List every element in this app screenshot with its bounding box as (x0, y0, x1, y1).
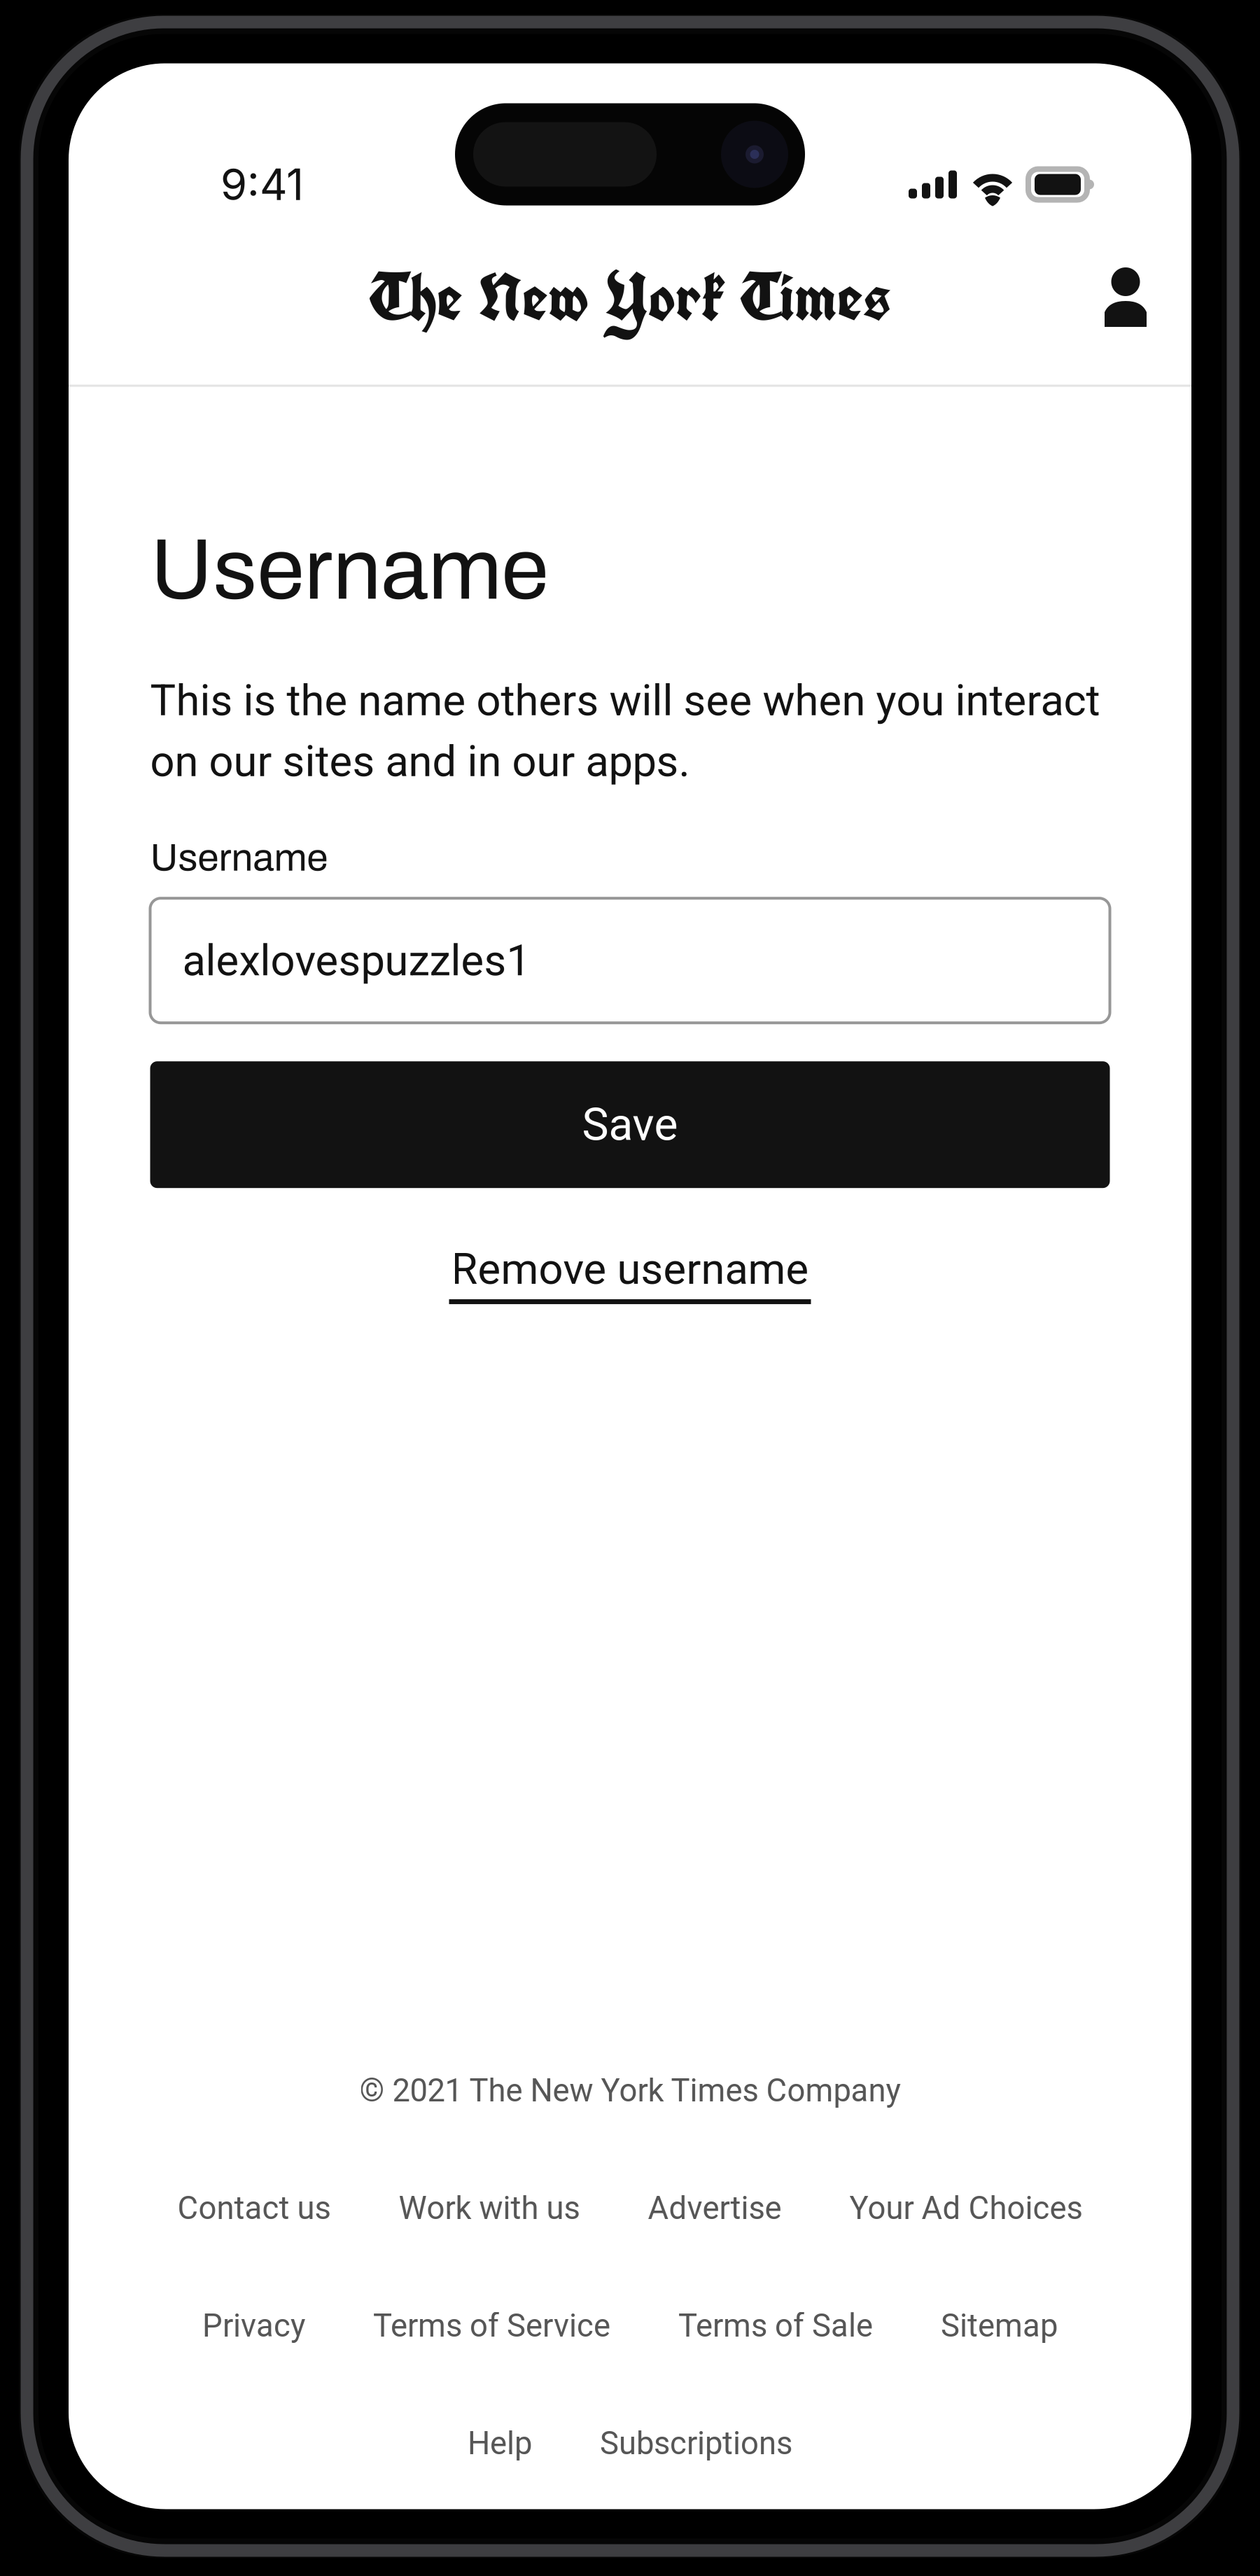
staticText: Remove username (451, 1244, 809, 1294)
button[interactable]: Sitemap (941, 2267, 1058, 2385)
staticText: The New York Times (369, 254, 891, 340)
button[interactable]: Advertise (648, 2149, 782, 2267)
button[interactable]: Privacy (202, 2267, 305, 2385)
staticText: Username (150, 523, 548, 617)
staticText: Help (468, 2425, 532, 2462)
staticText: Save (582, 1098, 678, 1151)
staticText: Contact us (177, 2190, 331, 2227)
button[interactable]: Your Ad Choices (849, 2149, 1083, 2267)
button[interactable]: Work with us (399, 2149, 580, 2267)
staticText: © 2021 The New York Times Company (359, 2072, 901, 2109)
button[interactable]: Terms of Service (373, 2267, 610, 2385)
button[interactable]: Remove username (150, 1244, 1110, 1304)
button[interactable]: Save (150, 1061, 1110, 1188)
button[interactable]: Help (468, 2385, 532, 2502)
staticText: This is the name others will see when yo… (150, 675, 1100, 787)
staticText: Terms of Sale (678, 2307, 873, 2344)
button[interactable]: Subscriptions (600, 2385, 792, 2502)
staticText: Subscriptions (600, 2425, 792, 2462)
staticText: 9:41 (220, 158, 304, 210)
staticText: Advertise (648, 2190, 782, 2227)
staticText: Work with us (399, 2190, 580, 2227)
button[interactable]: Terms of Sale (678, 2267, 873, 2385)
staticText: Terms of Service (373, 2307, 610, 2344)
staticText: Sitemap (941, 2307, 1058, 2344)
staticText: Username (150, 837, 328, 879)
button[interactable]: Account (1073, 238, 1178, 357)
staticText: Your Ad Choices (849, 2190, 1083, 2227)
staticText: Privacy (202, 2307, 305, 2344)
staticText: alexlovespuzzles1 (182, 935, 530, 986)
button[interactable]: Contact us (177, 2149, 331, 2267)
